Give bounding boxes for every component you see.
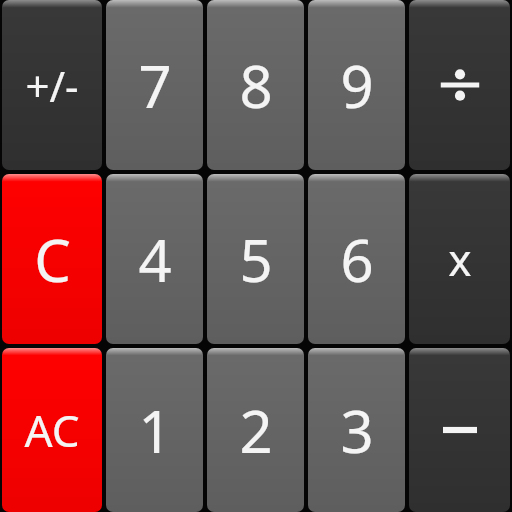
staticText: 9 (340, 46, 374, 125)
button[interactable]: x (409, 174, 510, 344)
staticText: 3 (340, 391, 374, 470)
button[interactable]: 1 (106, 348, 203, 512)
staticText: 4 (138, 220, 172, 299)
staticText: AC (24, 400, 80, 460)
staticText: x (448, 229, 472, 289)
staticText: 5 (239, 220, 273, 299)
button[interactable]: 7 (106, 0, 203, 170)
button[interactable]: 9 (308, 0, 405, 170)
staticText: 1 (138, 391, 172, 470)
button[interactable]: AC (2, 348, 102, 512)
staticText: 2 (239, 391, 273, 470)
staticText: C (34, 220, 71, 299)
staticText: 8 (239, 46, 273, 125)
button[interactable]: 3 (308, 348, 405, 512)
button[interactable]: 5 (207, 174, 304, 344)
staticText: +/- (25, 57, 79, 114)
button[interactable]: C (2, 174, 102, 344)
button[interactable]: Minus (409, 348, 510, 512)
staticText: 7 (138, 46, 172, 125)
button[interactable]: 2 (207, 348, 304, 512)
button[interactable]: 4 (106, 174, 203, 344)
button[interactable]: +/- (2, 0, 102, 170)
button[interactable]: 6 (308, 174, 405, 344)
button[interactable]: 8 (207, 0, 304, 170)
button[interactable]: Divide (409, 0, 510, 170)
staticText: 6 (340, 220, 374, 299)
